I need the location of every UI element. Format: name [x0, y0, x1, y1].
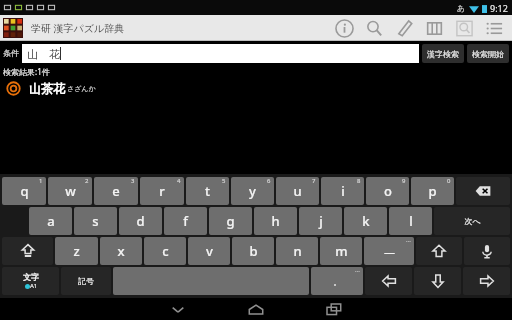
- staticText: ···: [355, 267, 360, 275]
- button[interactable]: a: [29, 207, 72, 235]
- button[interactable]: —: [364, 237, 414, 265]
- button[interactable]: s: [74, 207, 117, 235]
- button[interactable]: Search: [359, 15, 389, 41]
- staticText: 9: [402, 177, 406, 185]
- staticText: p: [428, 182, 437, 200]
- button[interactable]: Voice input: [464, 237, 510, 265]
- button[interactable]: k: [344, 207, 387, 235]
- staticText: 山茶花: [29, 81, 65, 96]
- staticText: b: [249, 242, 258, 260]
- button[interactable]: r: [140, 177, 184, 205]
- staticText: 0: [447, 177, 451, 185]
- button[interactable]: m: [320, 237, 362, 265]
- button[interactable]: u: [276, 177, 319, 205]
- button[interactable]: 次へ: [434, 207, 510, 235]
- button[interactable]: Right: [463, 267, 510, 295]
- button[interactable]: 山 花: [22, 44, 419, 63]
- staticText: y: [249, 182, 256, 200]
- staticText: e: [112, 182, 120, 200]
- button[interactable]: q: [2, 177, 46, 205]
- button[interactable]: t: [186, 177, 229, 205]
- button[interactable]: Advanced search: [449, 15, 479, 41]
- button[interactable]: z: [55, 237, 98, 265]
- staticText: 9:12: [490, 2, 508, 14]
- staticText: 5: [222, 177, 226, 185]
- button[interactable]: 山茶花: [0, 77, 512, 99]
- button[interactable]: v: [188, 237, 230, 265]
- staticText: v: [206, 242, 213, 260]
- staticText: あ: [457, 3, 466, 13]
- staticText: 検索開始: [472, 49, 504, 59]
- button[interactable]: Information: [329, 15, 359, 41]
- button[interactable]: 検索開始: [467, 44, 509, 63]
- staticText: —: [384, 244, 395, 259]
- button[interactable]: Recent apps: [295, 298, 373, 320]
- staticText: 4: [177, 177, 181, 185]
- staticText: 記号: [78, 276, 94, 286]
- button[interactable]: h: [254, 207, 297, 235]
- staticText: i: [341, 182, 345, 200]
- button[interactable]: Shift: [416, 237, 462, 265]
- staticText: 1: [39, 177, 43, 185]
- staticText: j: [319, 212, 323, 230]
- staticText: 山 花: [27, 46, 60, 61]
- button[interactable]: f: [164, 207, 207, 235]
- button[interactable]: e: [94, 177, 138, 205]
- button[interactable]: Home: [217, 298, 295, 320]
- staticText: 2: [85, 177, 89, 185]
- staticText: 次へ: [464, 216, 481, 226]
- staticText: ···: [406, 237, 411, 245]
- staticText: x: [117, 242, 125, 260]
- staticText: さざんか: [67, 84, 96, 93]
- staticText: h: [271, 212, 280, 230]
- staticText: r: [159, 182, 165, 200]
- staticText: o: [384, 182, 392, 200]
- button[interactable]: b: [232, 237, 274, 265]
- button[interactable]: Caps lock: [2, 237, 53, 265]
- button[interactable]: Down: [414, 267, 461, 295]
- button[interactable]: Columns: [419, 15, 449, 41]
- staticText: 漢字検索: [427, 49, 459, 59]
- button[interactable]: y: [231, 177, 274, 205]
- staticText: 。: [333, 276, 342, 287]
- staticText: u: [293, 182, 302, 200]
- button[interactable]: 学研 漢字パズル辞典: [3, 18, 125, 38]
- button[interactable]: i: [321, 177, 364, 205]
- button[interactable]: p: [411, 177, 454, 205]
- staticText: l: [409, 212, 413, 230]
- staticText: 学研 漢字パズル辞典: [31, 21, 125, 35]
- button[interactable]: Hide keyboard: [139, 298, 217, 320]
- staticText: 7: [312, 177, 316, 185]
- button[interactable]: o: [366, 177, 409, 205]
- button[interactable]: n: [276, 237, 318, 265]
- staticText: a: [47, 212, 55, 230]
- button[interactable]: l: [389, 207, 432, 235]
- button[interactable]: Backspace: [456, 177, 510, 205]
- staticText: w: [65, 182, 76, 200]
- button[interactable]: 記号: [61, 267, 111, 295]
- staticText: n: [293, 242, 302, 260]
- staticText: t: [205, 182, 210, 200]
- button[interactable]: w: [48, 177, 92, 205]
- button[interactable]: 文字: [2, 267, 59, 295]
- button[interactable]: Left: [365, 267, 412, 295]
- button[interactable]: j: [299, 207, 342, 235]
- staticText: c: [162, 242, 169, 260]
- button[interactable]: d: [119, 207, 162, 235]
- staticText: 3: [131, 177, 135, 185]
- staticText: d: [136, 212, 145, 230]
- button[interactable]: 。: [311, 267, 363, 295]
- button[interactable]: Handwriting input: [389, 15, 419, 41]
- button[interactable]: Menu: [479, 15, 509, 41]
- button[interactable]: x: [100, 237, 142, 265]
- staticText: 文字: [23, 272, 39, 282]
- button[interactable]: g: [209, 207, 252, 235]
- staticText: f: [183, 212, 188, 230]
- button[interactable]: 漢字検索: [422, 44, 464, 63]
- button[interactable]: c: [144, 237, 186, 265]
- staticText: 6: [267, 177, 271, 185]
- staticText: 条件: [3, 48, 19, 58]
- staticText: m: [335, 242, 348, 260]
- staticText: k: [362, 212, 370, 230]
